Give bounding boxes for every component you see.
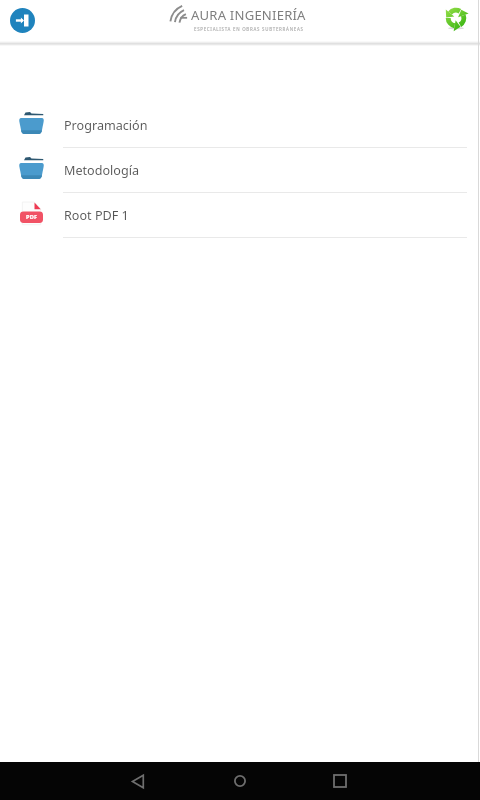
- button[interactable]: Recents: [320, 762, 360, 800]
- button[interactable]: Programación: [0, 103, 480, 148]
- button[interactable]: Back: [118, 762, 158, 800]
- staticText: Metodología: [64, 162, 139, 179]
- button[interactable]: Refresh: [442, 4, 470, 32]
- button[interactable]: Log out: [10, 8, 35, 33]
- staticText: PDF: [26, 213, 38, 221]
- staticText: AURA INGENIERÍA: [191, 6, 306, 24]
- button[interactable]: Metodología: [0, 148, 480, 193]
- staticText: ESPECIALISTA EN OBRAS SUBTERRÁNEAS: [194, 26, 304, 32]
- staticText: Root PDF 1: [64, 207, 129, 224]
- button[interactable]: Home: [220, 762, 260, 800]
- staticText: Programación: [64, 117, 148, 134]
- button[interactable]: PDF: [0, 193, 480, 238]
